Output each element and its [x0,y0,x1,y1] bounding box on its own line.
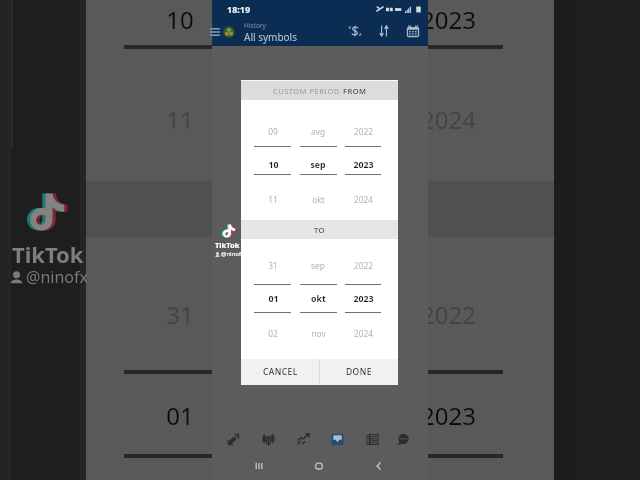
button[interactable]: Home [307,454,331,478]
staticText: okt [298,103,334,136]
staticText: 31 [166,298,194,331]
staticText: 02 [268,328,278,339]
staticText: History [244,21,266,30]
staticText: okt [312,194,325,205]
button[interactable] [341,253,385,345]
staticText: 09 [268,126,278,137]
staticText: CUSTOM PERIOD [273,86,343,96]
staticText: 2023 [353,159,374,171]
button[interactable]: Sort [373,20,395,42]
button[interactable]: Back [367,454,391,478]
staticText: 11 [268,194,278,205]
staticText: 10 [166,3,194,36]
staticText: @ninofx [26,266,88,288]
staticText: 18:19 [227,3,251,15]
button[interactable] [250,253,295,345]
staticText: TikTok [215,240,240,250]
staticText: CANCEL [263,366,298,378]
staticText: TO [314,225,325,235]
button[interactable]: Inbox [324,426,350,452]
staticText: 2022 [354,260,373,271]
staticText: 11 [166,103,194,136]
staticText: 31 [268,260,278,271]
staticText: 2024 [354,194,373,205]
button[interactable]: News [359,426,385,452]
button[interactable]: Compare [220,426,246,452]
staticText: 01 [268,293,279,305]
staticText: All symbols [244,30,297,44]
staticText: TikTok [12,239,84,269]
staticText: 2024 [421,103,476,136]
staticText: okt [311,293,326,305]
staticText: 2023 [421,3,476,36]
staticText: 2022 [354,126,373,137]
staticText: sep [310,159,326,171]
staticText: @ninofx [221,250,245,258]
staticText: sep [311,260,325,271]
button[interactable]: Calendar [402,20,424,42]
button[interactable] [341,119,385,211]
staticText: 01 [166,399,194,432]
button[interactable] [296,253,341,345]
staticText: sep [296,298,336,331]
button[interactable]: Recents [247,454,271,478]
button[interactable]: Candles [255,426,281,452]
button[interactable]: Chat [390,426,416,452]
button[interactable] [296,119,341,211]
button[interactable] [250,119,295,211]
staticText: 2024 [354,328,373,339]
staticText: 2023 [353,293,374,305]
staticText: DONE [346,366,372,378]
staticText: avg [311,126,325,137]
button[interactable]: Menu [208,25,222,39]
button[interactable]: DONE [320,359,398,385]
staticText: 10 [268,159,279,171]
staticText: 2022 [421,298,476,331]
button[interactable]: CANCEL [241,359,319,385]
button[interactable]: Trends [290,426,316,452]
staticText: nov [311,328,326,339]
button[interactable]: Exchange rates [344,20,366,42]
staticText: FROM [343,86,367,96]
staticText: 2023 [421,399,476,432]
